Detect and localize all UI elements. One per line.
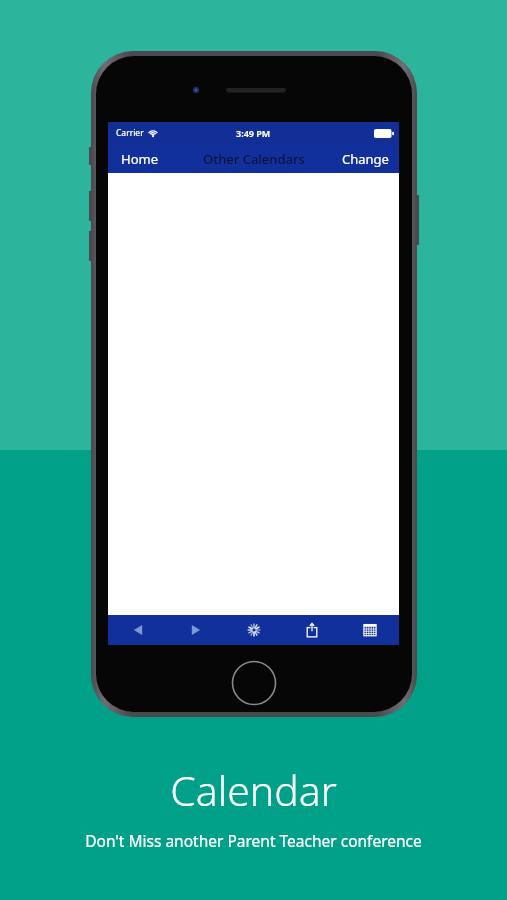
button[interactable]: Home (108, 144, 171, 173)
button[interactable]: Calendar (341, 615, 399, 645)
staticText: Don't Miss another Parent Teacher confer… (85, 830, 422, 851)
other: Home button (231, 660, 277, 706)
button[interactable]: Loading (225, 615, 283, 645)
button[interactable]: Other Calendars (195, 146, 313, 172)
staticText: Calendar (170, 762, 337, 818)
staticText: Other Calendars (203, 150, 305, 168)
button[interactable]: Share (283, 615, 341, 645)
staticText: Carrier (116, 127, 144, 139)
button[interactable]: Back (108, 615, 167, 645)
staticText: Home (121, 150, 158, 168)
button[interactable]: Forward (167, 615, 225, 645)
staticText: 3:49 PM (236, 127, 271, 139)
button[interactable]: Change (332, 144, 399, 173)
staticText: Change (342, 150, 389, 168)
